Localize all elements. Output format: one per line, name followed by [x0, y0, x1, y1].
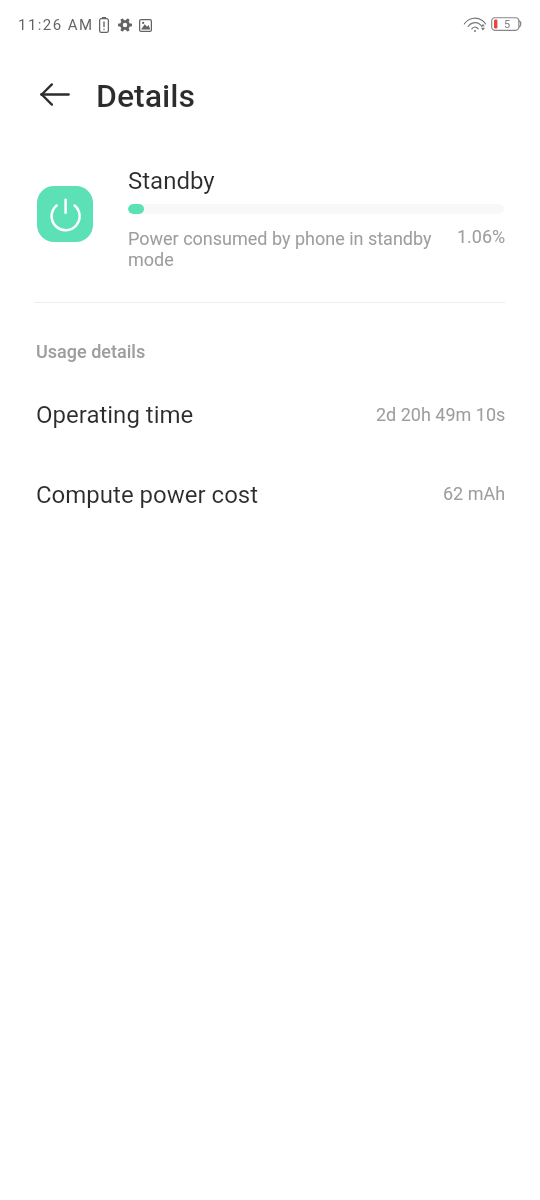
- staticText: 1.06%: [457, 226, 506, 247]
- staticText: Compute power cost: [36, 481, 259, 509]
- staticText: 11:26 AM: [18, 16, 94, 34]
- button[interactable]: Standby power usage: [0, 156, 540, 276]
- staticText: 5: [504, 18, 511, 31]
- staticText: Operating time: [36, 401, 194, 429]
- staticText: 2d 20h 49m 10s: [376, 404, 506, 425]
- button[interactable]: Back: [32, 72, 77, 117]
- button[interactable]: Operating time: [0, 401, 540, 445]
- staticText: Power consumed by phone in standby mode: [128, 228, 450, 270]
- staticText: 62 mAh: [443, 483, 506, 504]
- staticText: Details: [96, 77, 195, 115]
- button[interactable]: Compute power cost: [0, 481, 540, 525]
- staticText: Usage details: [36, 341, 146, 362]
- staticText: Standby: [128, 167, 215, 195]
